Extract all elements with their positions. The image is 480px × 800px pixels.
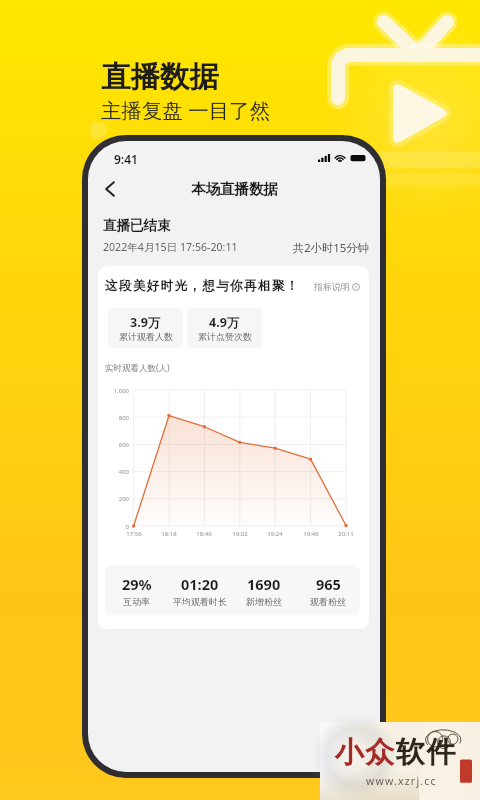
staticText: 累计点赞次数	[198, 331, 252, 342]
staticText: 累计观看人数	[119, 331, 173, 342]
staticText: 200	[105, 495, 129, 503]
staticText: 19:46	[296, 530, 326, 538]
staticText: 1,000	[105, 387, 129, 395]
staticText: 0	[105, 523, 129, 531]
staticText: 本场直播数据	[191, 180, 278, 198]
staticText: 18:40	[189, 530, 219, 538]
staticText: 800	[105, 414, 129, 422]
staticText: 1690	[247, 574, 281, 594]
staticText: 4.9万	[209, 314, 240, 331]
staticText: 20:11	[331, 530, 361, 538]
staticText: 指标说明	[314, 281, 350, 292]
button[interactable]: Back	[96, 175, 124, 203]
staticText: 直播数据	[101, 59, 219, 96]
staticText: 29%	[122, 574, 152, 594]
staticText: 17:56	[119, 530, 149, 538]
staticText: 2022年4月15日 17:56-20:11	[103, 240, 238, 254]
staticText: 实时观看人数(人)	[105, 362, 170, 374]
staticText: 9:41	[114, 151, 138, 165]
button[interactable]: 3.9万	[108, 308, 183, 348]
staticText: 400	[105, 468, 129, 476]
button[interactable]: 4.9万	[187, 308, 262, 348]
staticText: 600	[105, 441, 129, 449]
staticText: 直播已结束	[103, 217, 171, 234]
button[interactable]: 指标说明	[314, 281, 360, 292]
staticText: 观看粉丝	[310, 596, 346, 607]
staticText: www.xzrj.cc	[366, 774, 437, 788]
staticText: 互动率	[123, 596, 150, 607]
staticText: 共2小时15分钟	[293, 240, 369, 255]
staticText: 新增粉丝	[246, 596, 282, 607]
staticText: 965	[316, 574, 341, 594]
staticText: 平均观看时长	[173, 596, 227, 607]
staticText: 19:02	[225, 530, 255, 538]
staticText: 19:24	[260, 530, 290, 538]
staticText: 主播复盘 一目了然	[101, 96, 271, 124]
staticText: 这段美好时光，想与你再相聚！	[105, 278, 300, 294]
staticText: 软件	[395, 734, 456, 771]
staticText: 小众	[334, 734, 395, 771]
staticText: 01:20	[181, 574, 219, 594]
staticText: 3.9万	[130, 314, 161, 331]
staticText: 18:18	[154, 530, 184, 538]
